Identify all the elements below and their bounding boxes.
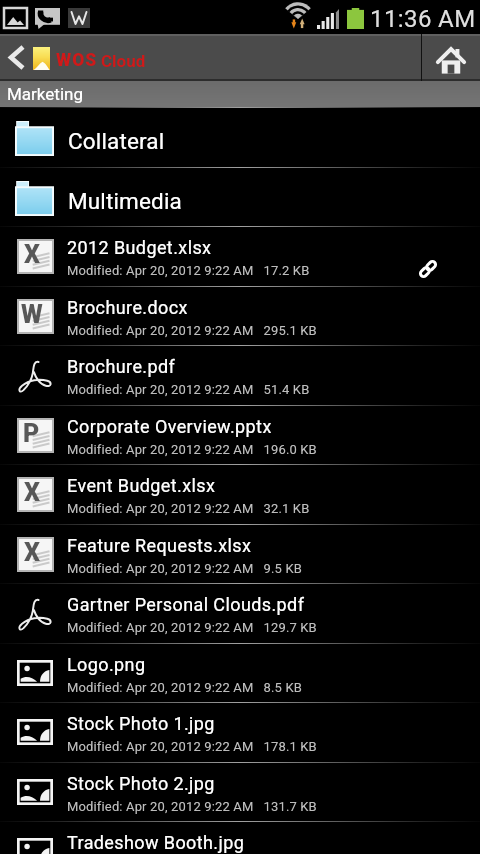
button[interactable]: P [0, 405, 480, 465]
staticText: Event Budget.xlsx [67, 475, 216, 496]
staticText: Modified: Apr 20, 2012 9:22 AM 9.5 KB [67, 561, 302, 576]
staticText: Logo.png [67, 654, 146, 675]
staticText: Cloud [101, 51, 146, 71]
staticText: Modified: Apr 20, 2012 9:22 AM 131.7 KB [67, 799, 317, 814]
staticText: Modified: Apr 20, 2012 9:22 AM 17.2 KB [67, 263, 310, 278]
staticText: Tradeshow Booth.jpg [67, 832, 245, 853]
staticText: 11:36 AM [370, 5, 476, 33]
staticText: X [24, 240, 40, 269]
staticText: 2012 Budget.xlsx [67, 237, 212, 258]
staticText: W [21, 300, 43, 329]
button[interactable]: Gartner Personal Clouds.pdf [0, 583, 480, 643]
staticText: Stock Photo 2.jpg [67, 773, 215, 794]
staticText: Feature Requests.xlsx [67, 535, 252, 556]
staticText: Multimedia [68, 188, 182, 214]
staticText: Modified: Apr 20, 2012 9:22 AM 32.1 KB [67, 501, 310, 516]
staticText: Gartner Personal Clouds.pdf [67, 594, 305, 615]
staticText: Modified: Apr 20, 2012 9:22 AM 295.1 KB [67, 323, 317, 338]
button[interactable]: X [0, 524, 480, 584]
button[interactable]: Home [422, 34, 480, 81]
button[interactable]: Multimedia [0, 167, 480, 227]
staticText: Brochure.pdf [67, 356, 176, 377]
button[interactable]: Brochure.pdf [0, 345, 480, 405]
staticText: P [23, 419, 40, 448]
staticText: Modified: Apr 20, 2012 9:22 AM 8.5 KB [67, 680, 302, 695]
staticText: Modified: Apr 20, 2012 9:22 AM 196.0 KB [67, 442, 317, 457]
button[interactable]: X [0, 226, 480, 286]
button[interactable]: X [0, 464, 480, 524]
staticText: Stock Photo 1.jpg [67, 713, 215, 734]
button[interactable]: Back [0, 34, 421, 81]
staticText: Brochure.docx [67, 297, 188, 318]
other: Back [0, 34, 33, 81]
staticText: Modified: Apr 20, 2012 9:22 AM 51.4 KB [67, 382, 310, 397]
button[interactable]: Tradeshow Booth.jpg [0, 821, 480, 854]
button[interactable]: W [0, 286, 480, 346]
button[interactable]: Collateral [0, 107, 480, 167]
staticText: Modified: Apr 20, 2012 9:22 AM 178.1 KB [67, 739, 317, 754]
staticText: Modified: Apr 20, 2012 9:22 AM 129.7 KB [67, 620, 317, 635]
staticText: X [24, 538, 40, 567]
button[interactable]: Stock Photo 2.jpg [0, 762, 480, 822]
staticText: Collateral [68, 128, 165, 154]
button[interactable]: Logo.png [0, 643, 480, 703]
staticText: WOS [56, 50, 98, 71]
button[interactable]: Shared link [406, 226, 480, 286]
staticText: Corporate Overview.pptx [67, 416, 272, 437]
staticText: Marketing [7, 84, 83, 104]
button[interactable]: Stock Photo 1.jpg [0, 702, 480, 762]
button[interactable]: Marketing [0, 81, 480, 107]
staticText: X [24, 478, 40, 507]
